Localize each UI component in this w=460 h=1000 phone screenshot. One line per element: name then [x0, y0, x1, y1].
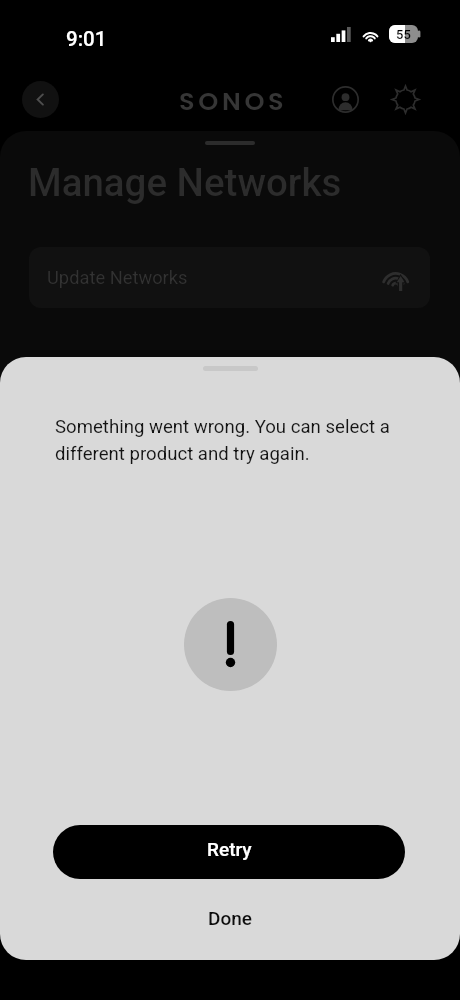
staticText: Manage Networks — [28, 160, 342, 205]
button[interactable]: Back — [22, 81, 59, 118]
staticText: 55 — [396, 27, 411, 42]
button[interactable]: Settings — [389, 83, 421, 115]
button[interactable]: Account — [329, 83, 361, 115]
staticText: Something went wrong. You can select a d… — [55, 416, 405, 465]
button[interactable]: Retry — [53, 825, 405, 879]
staticText: SONOS — [179, 83, 288, 119]
staticText: 9:01 — [66, 27, 107, 51]
button[interactable]: Update Networks — [29, 247, 430, 308]
staticText: Update Networks — [47, 267, 188, 288]
staticText: Done — [208, 907, 252, 929]
button[interactable]: Done — [0, 893, 460, 943]
staticText: Retry — [207, 838, 252, 860]
